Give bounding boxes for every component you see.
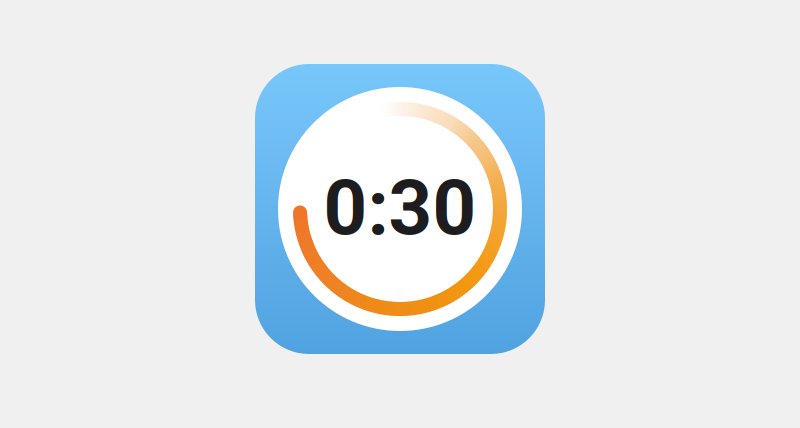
button[interactable]: Timer xyxy=(255,64,545,354)
staticText: 0:30 xyxy=(323,163,476,253)
